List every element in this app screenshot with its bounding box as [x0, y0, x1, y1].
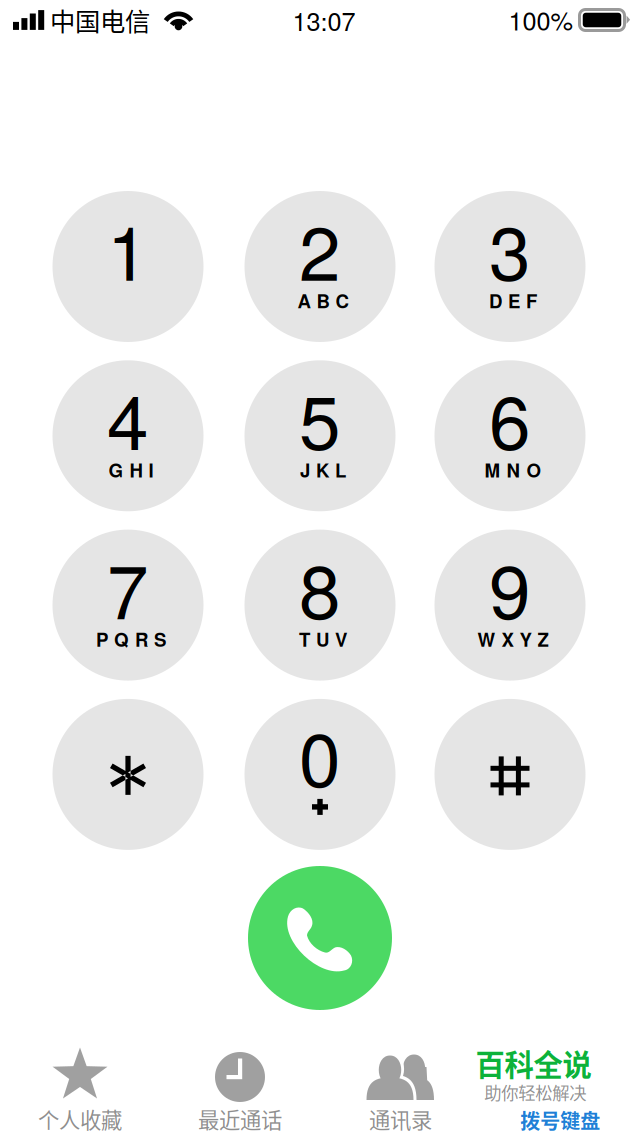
staticText: 7	[107, 534, 149, 640]
button[interactable]: 0	[244, 699, 395, 850]
button[interactable]: Call	[248, 866, 392, 1010]
button[interactable]: 最近通话	[160, 1036, 320, 1136]
staticText: 1	[107, 195, 149, 302]
staticText: WXYZ	[477, 626, 548, 652]
staticText: 个人收藏	[38, 1104, 122, 1134]
staticText: 6	[489, 364, 531, 471]
staticText: 8	[299, 534, 341, 640]
button[interactable]: 1	[52, 191, 203, 342]
staticText: JKL	[300, 456, 346, 483]
staticText: 100%	[508, 1, 573, 38]
staticText: TUV	[299, 626, 347, 652]
staticText: 通讯录	[369, 1104, 432, 1134]
staticText: PQRS	[96, 626, 166, 652]
button[interactable]: 5	[244, 360, 395, 511]
staticText: 5	[299, 364, 341, 471]
staticText: 4	[107, 364, 149, 471]
staticText: 中国电信	[50, 2, 150, 38]
staticText: 2	[299, 195, 341, 302]
staticText: 百科全说	[475, 1042, 591, 1084]
staticText: 0	[299, 701, 341, 808]
staticText: DEF	[489, 287, 537, 314]
button[interactable]: 8	[244, 530, 395, 681]
button[interactable]: 4	[52, 360, 203, 511]
button[interactable]: 通讯录	[320, 1036, 480, 1136]
staticText: GHI	[108, 456, 153, 483]
button[interactable]: 2	[244, 191, 395, 342]
staticText: 3	[489, 195, 531, 302]
staticText: MNO	[484, 456, 541, 483]
button[interactable]: 6	[434, 360, 585, 511]
staticText: 最近通话	[198, 1104, 282, 1134]
staticText: 拨号键盘	[520, 1105, 600, 1134]
button[interactable]: Star	[52, 699, 203, 850]
button[interactable]: 百科全说	[460, 1034, 640, 1136]
button[interactable]: 7	[52, 530, 203, 681]
button[interactable]: 9	[434, 530, 585, 681]
button[interactable]: 个人收藏	[0, 1036, 160, 1136]
staticText: 助你轻松解决	[484, 1079, 586, 1105]
button[interactable]: Pound	[434, 699, 585, 850]
staticText: 13:07	[292, 2, 355, 38]
button[interactable]: 3	[434, 191, 585, 342]
staticText: ABC	[297, 287, 348, 314]
staticText: 9	[489, 534, 531, 640]
